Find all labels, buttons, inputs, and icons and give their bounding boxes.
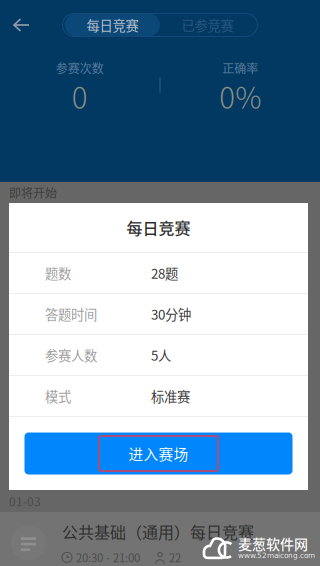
staticText: 标准赛: [151, 386, 190, 406]
staticText: 参赛次数: [56, 59, 104, 77]
staticText: 22: [169, 549, 181, 566]
staticText: 0%: [219, 75, 261, 117]
staticText: 即将开始: [9, 184, 57, 201]
staticText: 01-03: [9, 492, 41, 510]
staticText: 进入赛场: [128, 443, 188, 464]
staticText: 28题: [151, 263, 178, 283]
staticText: 已参竞赛: [181, 15, 233, 35]
staticText: 麦葱软件网: [238, 533, 308, 554]
staticText: 30分钟: [151, 304, 191, 324]
staticText: 每日竞赛: [86, 15, 138, 35]
staticText: 模式: [45, 386, 71, 406]
staticText: 每日竞赛: [126, 216, 190, 239]
button[interactable]: 已参竞赛: [160, 13, 255, 36]
staticText: 0: [72, 75, 88, 117]
staticText: www.52maicong.com: [238, 551, 315, 560]
button[interactable]: 进入赛场: [9, 424, 308, 482]
staticText: 公共基础（通用）每日竞赛: [62, 520, 254, 543]
staticText: 答题时间: [45, 304, 97, 324]
button[interactable]: 每日竞赛: [65, 13, 160, 36]
staticText: 参赛人数: [45, 345, 97, 365]
button[interactable]: Back: [0, 0, 42, 50]
staticText: 正确率: [222, 59, 258, 77]
staticText: 5人: [151, 345, 171, 365]
staticText: 20:30 - 21:00: [76, 549, 140, 566]
staticText: 题数: [45, 263, 71, 283]
button[interactable]: 公共基础（通用）每日竞赛: [0, 512, 320, 566]
